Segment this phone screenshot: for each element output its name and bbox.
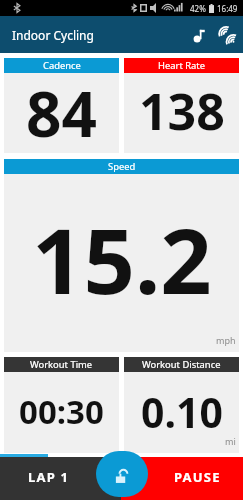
staticText: mph [216,334,236,346]
button[interactable]: Workout Distance [124,357,239,453]
staticText: Indoor Cycling [12,27,94,43]
staticText: Workout Time [30,358,93,371]
staticText: Heart Rate [158,59,206,72]
staticText: PAUSE [174,468,221,486]
staticText: 84 [26,71,97,151]
button[interactable]: Music [186,22,212,48]
button[interactable]: LAP 1 [0,457,121,500]
button[interactable]: Workout Time [4,357,119,453]
staticText: 0.10 [141,384,223,440]
staticText: LAP 1 [28,468,70,486]
staticText: 15.2 [32,198,212,321]
button[interactable]: Lock screen [96,451,148,497]
button[interactable]: Cadence [4,58,119,153]
staticText: 42% [190,3,206,14]
staticText: Workout Distance [142,358,221,371]
button[interactable]: PAUSE [121,457,243,500]
button[interactable]: Heart Rate [124,58,239,153]
staticText: mi [225,435,236,447]
staticText: 16:49 [217,3,238,14]
staticText: 00:30 [19,389,104,434]
staticText: 138 [139,77,225,145]
button[interactable]: Sensors [212,22,238,48]
staticText: Cadence [43,59,81,72]
button[interactable]: Speed [4,159,239,352]
staticText: Speed [108,160,136,173]
